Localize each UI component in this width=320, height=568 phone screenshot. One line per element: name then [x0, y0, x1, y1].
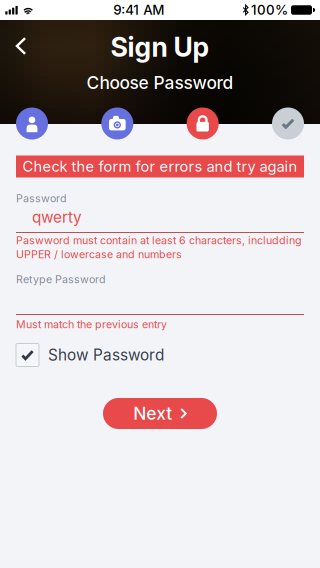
button[interactable]: Finish — [272, 107, 304, 139]
button[interactable]: Account details — [16, 107, 48, 139]
button[interactable]: Show Password — [0, 343, 320, 367]
staticText: Choose Password — [86, 72, 233, 93]
staticText: 9:41 AM — [113, 2, 164, 18]
staticText: UPPER / lowercase and numbers — [16, 248, 182, 261]
button[interactable]: Back — [4, 31, 38, 61]
staticText: Paswword must contain at least 6 charact… — [16, 234, 302, 247]
staticText: Retype Password — [16, 273, 106, 286]
staticText: Must match the previous entry — [16, 318, 167, 331]
button[interactable]: Profile photo — [101, 107, 133, 139]
staticText: Show Password — [48, 346, 164, 364]
staticText: 100% — [251, 2, 288, 18]
staticText: qwerty — [32, 208, 82, 227]
staticText: Check the form for errors and try again — [22, 158, 297, 175]
button[interactable]: Choose password — [187, 107, 219, 139]
button[interactable]: Next — [103, 398, 217, 429]
staticText: Sign Up — [110, 31, 209, 63]
staticText: Next — [133, 403, 172, 424]
staticText: Password — [16, 192, 67, 205]
